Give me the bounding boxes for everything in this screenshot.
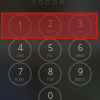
staticText: 3 [78, 18, 83, 30]
button[interactable]: 0 [38, 86, 62, 100]
staticText: 6 [78, 42, 83, 54]
button[interactable]: 8 [38, 62, 62, 86]
other: PIN entry [0, 0, 100, 100]
staticText: 8 [48, 66, 53, 78]
staticText: TUV [47, 78, 54, 82]
button[interactable]: 2 [38, 14, 62, 38]
button[interactable]: 4 [8, 38, 32, 62]
staticText: JKL [47, 54, 53, 58]
staticText: 0 [48, 90, 53, 100]
staticText: 7 [18, 66, 23, 78]
staticText: PQRS [15, 78, 25, 82]
staticText: 9 [78, 66, 83, 78]
button[interactable]: 1 [8, 14, 32, 38]
staticText: 4 [18, 42, 23, 54]
button[interactable]: 9 [68, 62, 92, 86]
staticText: 2 [48, 18, 53, 30]
button[interactable]: 5 [38, 38, 62, 62]
button[interactable]: 6 [68, 38, 92, 62]
staticText: 5 [48, 42, 53, 54]
staticText: ABC [47, 30, 54, 34]
staticText: WXYZ [75, 78, 85, 82]
staticText: DEF [77, 30, 84, 34]
staticText: GHI [17, 54, 24, 58]
button[interactable]: 7 [8, 62, 32, 86]
staticText: 1 [18, 20, 23, 32]
staticText: MNO [76, 54, 85, 58]
button[interactable]: 3 [68, 14, 92, 38]
